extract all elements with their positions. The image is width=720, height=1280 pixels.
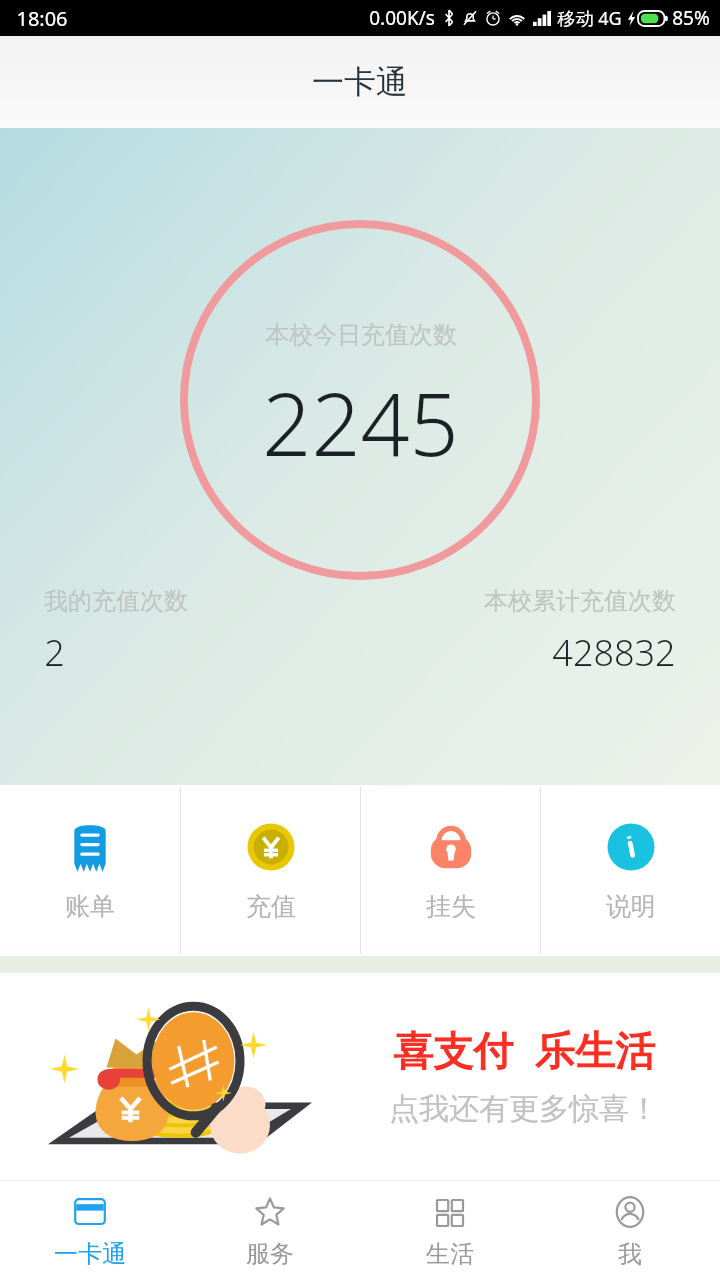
- staticText: 18:06: [16, 5, 68, 32]
- button[interactable]: 充值: [181, 785, 360, 956]
- staticText: 喜支付: [393, 1026, 513, 1076]
- staticText: 充值: [246, 891, 296, 922]
- staticText: 账单: [65, 891, 115, 922]
- staticText: 生活: [426, 1239, 474, 1269]
- staticText: 一卡通: [54, 1239, 126, 1269]
- staticText: 移动 4G: [557, 6, 622, 31]
- staticText: 挂失: [426, 891, 476, 922]
- button[interactable]: 喜支付: [0, 973, 720, 1180]
- button[interactable]: 服务: [180, 1181, 360, 1280]
- staticText: 本校今日充值次数: [265, 320, 457, 350]
- staticText: 2: [44, 628, 65, 677]
- button[interactable]: 生活: [360, 1181, 540, 1280]
- staticText: 2245: [262, 364, 459, 481]
- button[interactable]: 账单: [0, 785, 180, 956]
- button[interactable]: 说明: [541, 785, 720, 956]
- staticText: 服务: [246, 1239, 294, 1269]
- button[interactable]: 我: [540, 1181, 720, 1280]
- button[interactable]: 一卡通: [0, 1181, 180, 1280]
- staticText: 乐生活: [535, 1026, 655, 1076]
- staticText: 我: [618, 1239, 642, 1269]
- staticText: 本校累计充值次数: [484, 586, 676, 616]
- button[interactable]: 挂失: [361, 785, 540, 956]
- staticText: 点我还有更多惊喜！: [389, 1090, 659, 1128]
- staticText: 85%: [672, 5, 710, 31]
- staticText: 428832: [552, 628, 676, 677]
- staticText: 0.00K/s: [369, 5, 435, 31]
- staticText: 一卡通: [312, 62, 408, 102]
- staticText: 我的充值次数: [44, 586, 188, 616]
- staticText: 说明: [606, 891, 656, 922]
